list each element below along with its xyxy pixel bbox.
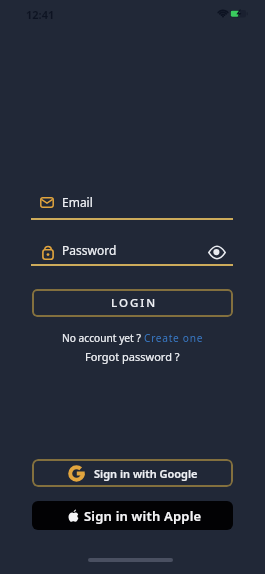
staticText: Create one (144, 331, 204, 345)
staticText: Forgot password ? (85, 349, 180, 364)
staticText: 12:41 (26, 7, 55, 22)
staticText: No account yet ? (62, 331, 144, 345)
button[interactable]: LOGIN (32, 289, 233, 317)
staticText: Sign in with Google (94, 466, 198, 481)
button[interactable] (208, 246, 226, 259)
staticText: Password (62, 242, 117, 258)
button[interactable]: Forgot password ? (85, 349, 180, 364)
staticText: LOGIN (111, 295, 158, 311)
button[interactable]: Create one (144, 331, 204, 345)
button[interactable]: Sign in with Apple (32, 501, 233, 530)
staticText: Email (62, 194, 93, 210)
button[interactable]: Sign in with Google (32, 459, 233, 487)
staticText: Sign in with Apple (84, 507, 202, 525)
